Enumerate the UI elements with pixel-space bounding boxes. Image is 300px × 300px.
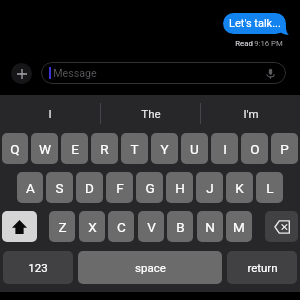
button[interactable]: K: [226, 172, 253, 203]
staticText: 9:16 PM: [254, 39, 283, 48]
staticText: J: [206, 180, 214, 196]
button[interactable]: D: [76, 172, 103, 203]
button[interactable]: W: [31, 133, 58, 164]
staticText: Y: [160, 141, 169, 157]
button[interactable]: Shift: [2, 211, 37, 242]
button[interactable]: X: [79, 211, 105, 242]
staticText: T: [130, 141, 139, 157]
staticText: Read: [234, 39, 254, 48]
button[interactable]: B: [167, 211, 193, 242]
staticText: X: [88, 219, 97, 235]
staticText: C: [117, 219, 126, 235]
staticText: R: [100, 141, 109, 157]
staticText: D: [85, 180, 94, 196]
staticText: I: [223, 141, 227, 157]
button[interactable]: N: [197, 211, 223, 242]
staticText: W: [39, 141, 51, 157]
button[interactable]: G: [136, 172, 163, 203]
button[interactable]: C: [108, 211, 134, 242]
button[interactable]: J: [196, 172, 223, 203]
staticText: O: [250, 141, 260, 157]
button[interactable]: F: [106, 172, 133, 203]
button[interactable]: I'm: [201, 99, 300, 128]
staticText: The: [141, 107, 161, 120]
button[interactable]: Q: [2, 133, 28, 164]
staticText: K: [235, 180, 244, 196]
button[interactable]: P: [271, 133, 298, 164]
button[interactable]: M: [226, 211, 252, 242]
staticText: U: [190, 141, 199, 157]
staticText: return: [247, 261, 278, 274]
button[interactable]: return: [227, 251, 297, 284]
button[interactable]: Let's talk...: [223, 13, 286, 34]
staticText: Q: [10, 141, 20, 157]
button[interactable]: Z: [49, 211, 75, 242]
button[interactable]: I: [211, 133, 238, 164]
staticText: B: [176, 219, 185, 235]
staticText: Z: [58, 219, 67, 235]
staticText: N: [205, 219, 215, 235]
staticText: V: [147, 219, 156, 235]
staticText: E: [71, 141, 79, 157]
staticText: G: [145, 180, 155, 196]
button[interactable]: E: [61, 133, 88, 164]
button[interactable]: H: [166, 172, 193, 203]
staticText: A: [26, 180, 35, 196]
staticText: I: [48, 107, 52, 120]
button[interactable]: L: [256, 172, 283, 203]
button[interactable]: space: [78, 251, 222, 284]
button[interactable]: 123: [3, 251, 73, 284]
staticText: P: [280, 141, 289, 157]
button[interactable]: I: [0, 99, 100, 128]
staticText: space: [135, 261, 166, 274]
staticText: L: [266, 180, 274, 196]
button[interactable]: U: [181, 133, 208, 164]
button[interactable]: The: [101, 99, 200, 128]
other: Voice message: [264, 67, 277, 80]
button[interactable]: A: [17, 172, 43, 203]
staticText: F: [116, 180, 124, 196]
staticText: Message: [53, 67, 97, 80]
staticText: H: [175, 180, 185, 196]
button[interactable]: Add attachment: [11, 63, 32, 84]
button[interactable]: Message: [41, 62, 286, 84]
button[interactable]: Backspace: [265, 211, 298, 242]
button[interactable]: S: [46, 172, 73, 203]
staticText: Let's talk...: [229, 17, 281, 30]
staticText: S: [55, 180, 64, 196]
button[interactable]: O: [241, 133, 268, 164]
staticText: I'm: [243, 107, 259, 120]
button[interactable]: Y: [151, 133, 178, 164]
button[interactable]: V: [138, 211, 164, 242]
button[interactable]: T: [121, 133, 148, 164]
staticText: M: [233, 219, 245, 235]
staticText: 123: [28, 261, 48, 274]
button[interactable]: R: [91, 133, 118, 164]
